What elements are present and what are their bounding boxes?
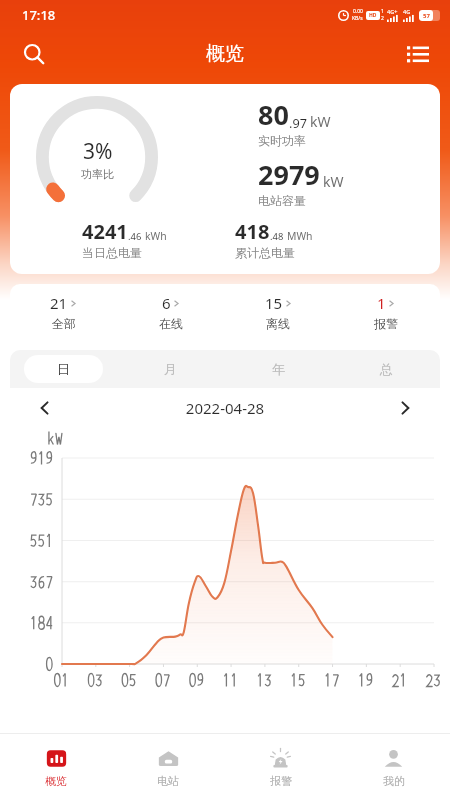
staticText: KB/s bbox=[352, 15, 363, 22]
button[interactable]: 概览 bbox=[0, 734, 112, 800]
button[interactable]: 15 bbox=[224, 284, 332, 340]
staticText: 当日总电量 bbox=[82, 245, 142, 260]
staticText: 0.00 bbox=[353, 8, 363, 15]
button[interactable]: 日 bbox=[24, 355, 103, 383]
button[interactable]: 21 bbox=[10, 284, 117, 340]
staticText: 年 bbox=[272, 361, 285, 377]
button[interactable]: 总 bbox=[346, 355, 426, 383]
staticText: 概览 bbox=[45, 774, 67, 788]
staticText: 2979 bbox=[258, 156, 320, 193]
staticText: .97 bbox=[289, 114, 307, 131]
button[interactable]: Menu bbox=[398, 34, 438, 74]
button[interactable]: 6 bbox=[117, 284, 224, 340]
staticText: HD bbox=[369, 12, 377, 19]
staticText: 全部 bbox=[52, 316, 76, 331]
staticText: 57 bbox=[423, 12, 430, 20]
staticText: kW bbox=[323, 172, 344, 191]
staticText: 1 bbox=[381, 8, 384, 15]
button[interactable]: Search bbox=[14, 34, 54, 74]
staticText: 17:18 bbox=[22, 6, 56, 24]
staticText: 6 bbox=[162, 293, 171, 313]
staticText: 1 bbox=[377, 293, 386, 313]
staticText: 月 bbox=[164, 361, 177, 377]
staticText: 功率比 bbox=[81, 167, 114, 181]
staticText: .48 bbox=[270, 230, 284, 243]
button[interactable]: 我的 bbox=[337, 734, 450, 800]
button[interactable]: 报警 bbox=[224, 734, 337, 800]
staticText: kW bbox=[310, 112, 331, 131]
staticText: kWh bbox=[145, 229, 167, 243]
staticText: 我的 bbox=[383, 774, 405, 788]
staticText: 报警 bbox=[374, 316, 398, 331]
staticText: 实时功率 bbox=[258, 133, 306, 148]
staticText: 日 bbox=[57, 361, 70, 377]
staticText: 21 bbox=[50, 293, 68, 313]
staticText: 电站 bbox=[157, 774, 179, 788]
staticText: 418 bbox=[235, 218, 270, 245]
staticText: 4G+ bbox=[387, 8, 398, 15]
button[interactable]: 电站 bbox=[112, 734, 224, 800]
staticText: .46 bbox=[128, 230, 142, 243]
staticText: 在线 bbox=[159, 316, 183, 331]
staticText: 4241 bbox=[82, 218, 128, 245]
staticText: 2022-04-28 bbox=[60, 398, 390, 418]
staticText: 累计总电量 bbox=[235, 245, 295, 260]
button[interactable]: Previous day bbox=[30, 393, 60, 423]
staticText: MWh bbox=[287, 229, 313, 243]
staticText: 4G bbox=[403, 8, 411, 15]
staticText: 报警 bbox=[270, 774, 292, 788]
staticText: 2 bbox=[381, 15, 384, 22]
staticText: 3% bbox=[83, 137, 113, 166]
staticText: 总 bbox=[380, 361, 393, 377]
button[interactable]: Next day bbox=[390, 393, 420, 423]
staticText: 概览 bbox=[206, 42, 244, 66]
button[interactable]: 年 bbox=[238, 355, 318, 383]
button[interactable]: 月 bbox=[131, 355, 210, 383]
staticText: 80 bbox=[258, 96, 289, 133]
staticText: 电站容量 bbox=[258, 193, 306, 208]
button[interactable]: 1 bbox=[332, 284, 440, 340]
staticText: 离线 bbox=[266, 316, 290, 331]
staticText: 15 bbox=[265, 293, 283, 313]
